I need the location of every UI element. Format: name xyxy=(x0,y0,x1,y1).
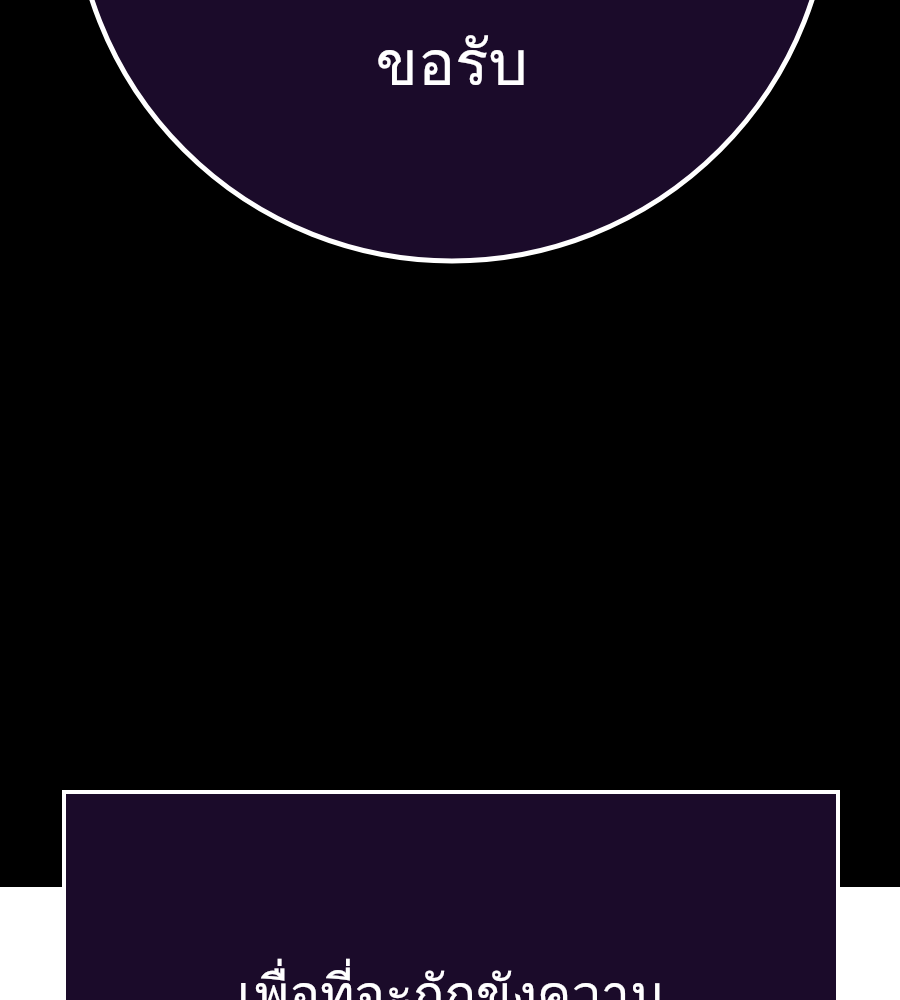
button[interactable]: Comic panel page xyxy=(0,0,900,1000)
